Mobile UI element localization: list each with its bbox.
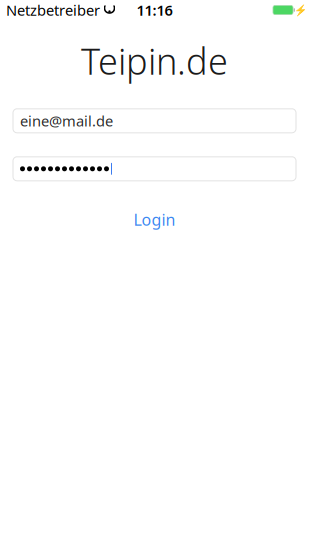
staticText: Teipin.de xyxy=(81,37,228,85)
button[interactable]: eine@mail.de xyxy=(13,109,296,133)
staticText: eine@mail.de xyxy=(20,111,113,131)
staticText: 11:16 xyxy=(136,0,172,20)
staticText: ⚡ xyxy=(293,4,306,16)
button[interactable] xyxy=(13,157,296,181)
staticText: Netzbetreiber xyxy=(6,0,100,20)
staticText: Login xyxy=(133,209,175,230)
button[interactable]: Login xyxy=(0,203,309,236)
